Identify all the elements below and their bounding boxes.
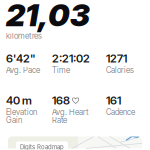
staticText: 40 m [6, 94, 32, 107]
staticText: Cadence [106, 107, 135, 117]
staticText: 21,03 [6, 0, 90, 34]
staticText: Avg. Heart [52, 107, 89, 117]
staticText: Digits Roadmap [20, 143, 64, 150]
staticText: 1271 [106, 52, 127, 65]
staticText: 2:21:02 [52, 52, 90, 65]
staticText: kilometres [6, 31, 42, 41]
staticText: 6'42" [6, 52, 36, 65]
staticText: Time [52, 65, 70, 75]
staticText: 161 [106, 94, 121, 107]
staticText: Elevation [6, 107, 37, 117]
staticText: Calories [106, 65, 134, 75]
staticText: Rate [52, 115, 67, 125]
staticText: Gain [6, 115, 22, 125]
staticText: Avg. Pace [6, 65, 40, 75]
staticText: 168 [52, 94, 70, 107]
